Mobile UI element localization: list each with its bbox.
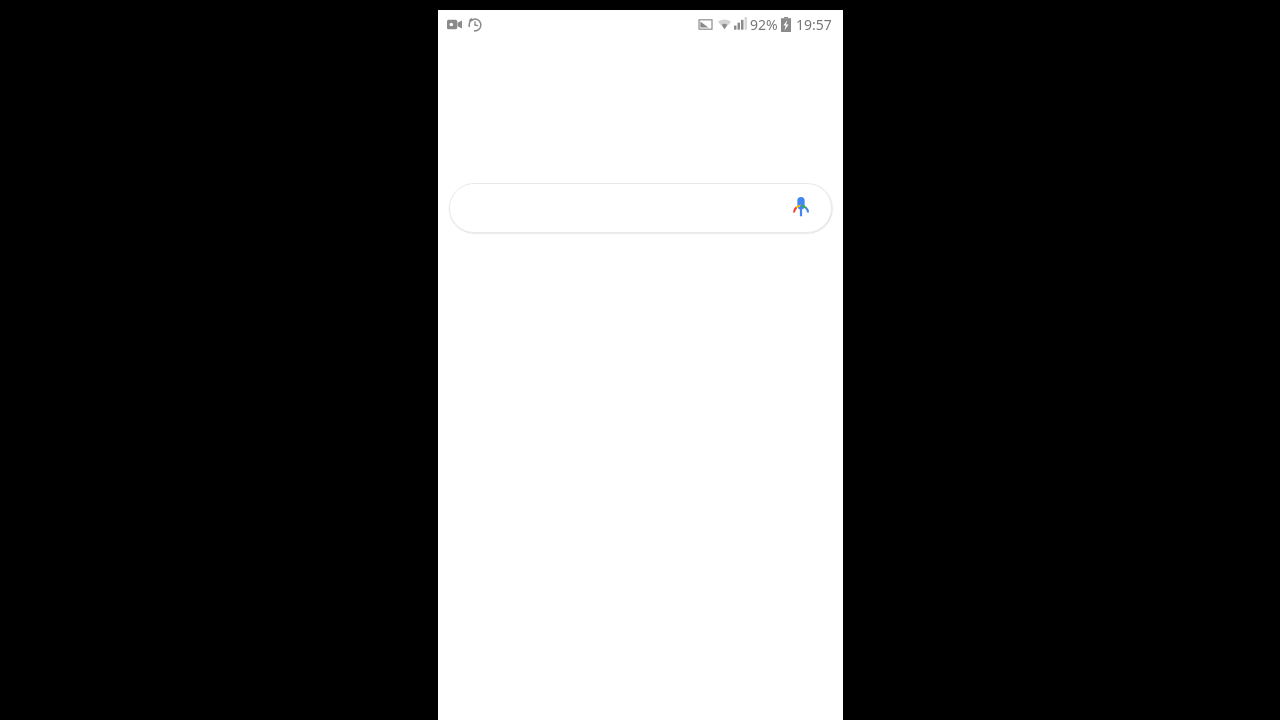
staticText: 92% [750,15,778,34]
button[interactable]: Voice search [449,183,832,233]
staticText: 19:57 [796,15,832,34]
button[interactable]: Voice search [788,195,814,221]
